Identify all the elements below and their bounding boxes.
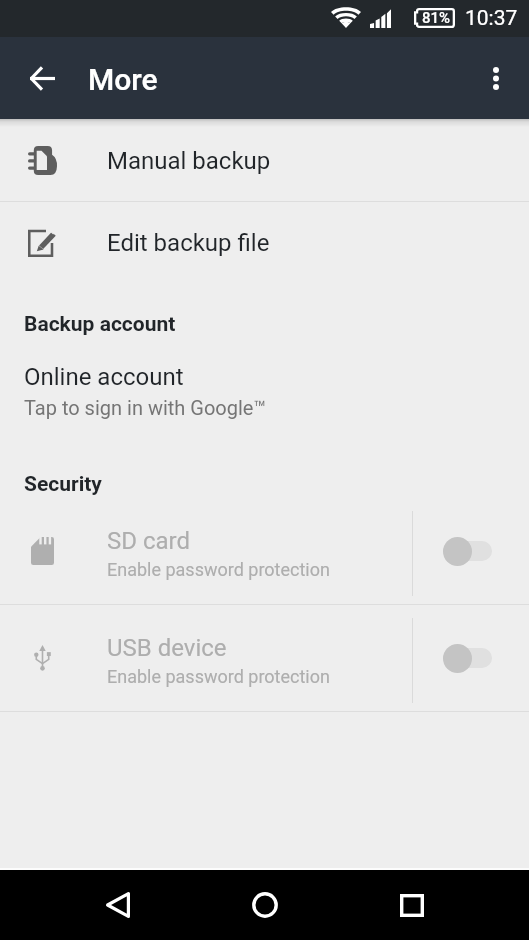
staticText: Security	[24, 472, 102, 497]
button[interactable]: SD card	[0, 500, 529, 606]
staticText: Tap to sign in with Google™	[24, 396, 266, 419]
staticText: Enable password protection	[107, 666, 330, 687]
staticText: Enable password protection	[107, 559, 330, 580]
button[interactable]: USB device	[0, 607, 529, 713]
button[interactable]: Back	[44, 870, 191, 940]
button[interactable]: Home	[191, 870, 338, 940]
staticText: Online account	[24, 363, 184, 391]
staticText: SD card	[107, 527, 191, 555]
button[interactable]: More options	[466, 37, 526, 119]
button[interactable]: Edit backup file	[0, 202, 529, 284]
button[interactable]: Recent apps	[338, 870, 485, 940]
staticText: USB device	[107, 634, 227, 662]
staticText: Backup account	[24, 312, 176, 337]
staticText: 10:37	[465, 6, 518, 31]
button[interactable]: Manual backup	[0, 120, 529, 202]
staticText: More	[88, 62, 158, 97]
staticText: Manual backup	[107, 147, 271, 175]
button[interactable]: Toggle SD card	[413, 500, 529, 606]
staticText: Edit backup file	[107, 229, 270, 257]
button[interactable]: Back	[0, 37, 84, 119]
button[interactable]: Online account	[0, 363, 529, 438]
button[interactable]: Toggle USB device	[413, 607, 529, 713]
staticText: 81%	[422, 9, 451, 27]
